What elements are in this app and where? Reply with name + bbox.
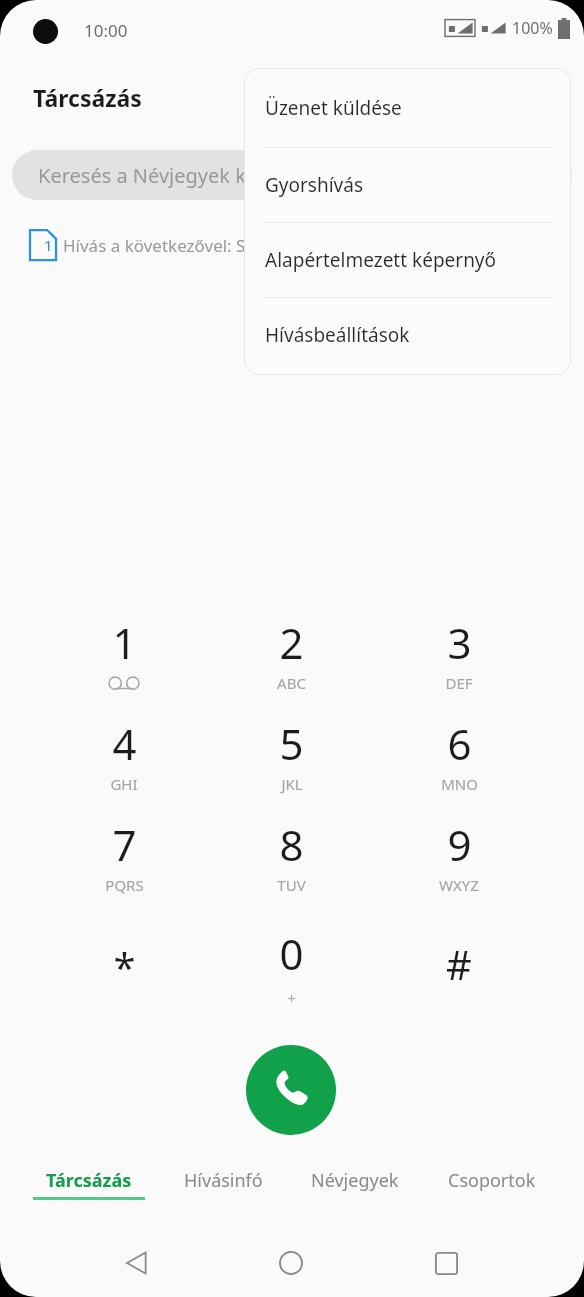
staticText: Keresés a Névjegyek között xyxy=(38,162,294,189)
staticText: 5 xyxy=(279,715,304,772)
staticText: GHI xyxy=(110,774,138,794)
button[interactable]: 1 xyxy=(30,227,291,263)
staticText: Névjegyek xyxy=(311,1168,399,1193)
button[interactable]: Gyorshívás xyxy=(244,148,571,222)
button[interactable]: Csoportok xyxy=(422,1168,562,1216)
staticText: Hívásbeállítások xyxy=(265,322,410,348)
button[interactable]: Üzenet küldése xyxy=(244,68,571,147)
staticText: TUV xyxy=(277,875,306,895)
staticText: ABC xyxy=(277,673,306,693)
staticText: Hívás a következővel: SIM 1 xyxy=(63,234,281,257)
staticText: WXYZ xyxy=(439,875,479,895)
staticText: Tárcsázás xyxy=(46,1168,132,1193)
button[interactable]: 9 xyxy=(384,816,534,912)
button[interactable]: Home xyxy=(261,1233,321,1293)
button[interactable]: 6 xyxy=(384,715,534,811)
button[interactable]: 7 xyxy=(49,816,199,912)
button[interactable]: 5 xyxy=(216,715,366,811)
button[interactable]: 0 xyxy=(216,925,366,1021)
button[interactable]: 4 xyxy=(49,715,199,811)
button[interactable]: Alapértelmezett képernyő xyxy=(244,223,571,297)
staticText: Hívásinfó xyxy=(184,1168,263,1193)
staticText: Csoportok xyxy=(448,1168,536,1193)
staticText: 2 xyxy=(279,614,304,671)
button[interactable]: Névjegyek xyxy=(285,1168,425,1216)
staticText: 4 xyxy=(112,715,137,772)
staticText: 10:00 xyxy=(84,19,128,42)
button[interactable]: 2 xyxy=(216,614,366,710)
staticText: # xyxy=(446,937,472,991)
button[interactable]: 8 xyxy=(216,816,366,912)
staticText: Alapértelmezett képernyő xyxy=(265,247,497,273)
button[interactable]: * xyxy=(49,925,199,1021)
button[interactable]: 3 xyxy=(384,614,534,710)
staticText: + xyxy=(287,988,296,1008)
button[interactable]: Hívásinfó xyxy=(153,1168,293,1216)
button[interactable]: Back xyxy=(107,1233,167,1293)
staticText: JKL xyxy=(281,774,303,794)
staticText: Tárcsázás xyxy=(33,82,142,113)
staticText: 0 xyxy=(279,925,304,982)
staticText: Üzenet küldése xyxy=(265,95,402,121)
button[interactable]: Tárcsázás xyxy=(19,1168,159,1216)
staticText: 8 xyxy=(279,816,304,873)
staticText: 9 xyxy=(447,816,472,873)
staticText: MNO xyxy=(441,774,478,794)
button[interactable]: Hívásbeállítások xyxy=(244,298,571,372)
button[interactable]: # xyxy=(384,925,534,1021)
staticText: PQRS xyxy=(105,875,144,895)
button[interactable]: 1 xyxy=(49,614,199,710)
staticText: 1 xyxy=(44,235,53,255)
staticText: 7 xyxy=(112,816,137,873)
staticText: 100% xyxy=(512,17,553,39)
button[interactable]: Recent apps xyxy=(416,1233,476,1293)
staticText: 6 xyxy=(447,715,472,772)
button[interactable]: Keresés a Névjegyek között xyxy=(12,150,572,200)
staticText: DEF xyxy=(445,673,473,693)
button[interactable]: Call xyxy=(246,1045,336,1135)
staticText: * xyxy=(113,939,136,993)
staticText: 1 xyxy=(112,614,137,671)
staticText: 3 xyxy=(447,614,472,671)
staticText: Gyorshívás xyxy=(265,172,364,198)
